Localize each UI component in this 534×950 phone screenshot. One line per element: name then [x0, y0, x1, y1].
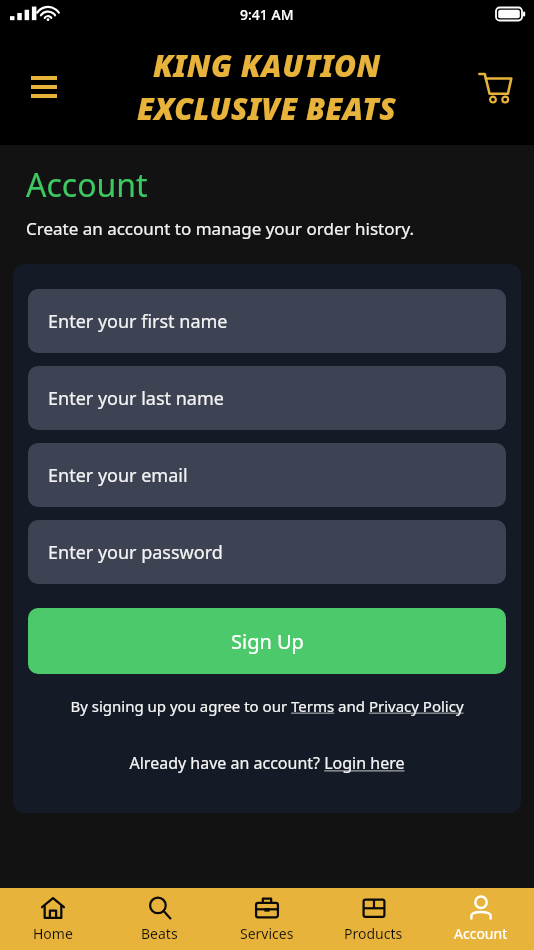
staticText: Home [33, 924, 73, 943]
staticText: Enter your first name [48, 309, 228, 334]
button[interactable]: Cart [471, 63, 519, 111]
staticText: 9:41 AM [240, 5, 294, 24]
button[interactable]: Beats [106, 888, 213, 950]
button[interactable]: Products [320, 888, 427, 950]
staticText: Services [240, 924, 294, 943]
staticText: Enter your password [48, 540, 223, 565]
button[interactable]: Already have an account? Login here [28, 752, 506, 774]
button[interactable]: Enter your first name [28, 289, 506, 353]
staticText: Sign Up [231, 628, 304, 655]
staticText: Beats [141, 924, 178, 943]
staticText: KING KAUTION [153, 45, 381, 86]
button[interactable]: Account [427, 888, 534, 950]
button[interactable]: Services [213, 888, 320, 950]
staticText: Account [454, 924, 508, 943]
staticText: Products [344, 924, 403, 943]
staticText: Account [26, 163, 148, 207]
staticText: Enter your email [48, 463, 188, 488]
button[interactable]: Menu [22, 65, 66, 109]
button[interactable]: Enter your password [28, 520, 506, 584]
button[interactable]: By signing up you agree to our Terms and… [28, 696, 506, 716]
staticText: Enter your last name [48, 386, 224, 411]
button[interactable]: Enter your email [28, 443, 506, 507]
button[interactable]: Enter your last name [28, 366, 506, 430]
button[interactable]: Home [0, 888, 106, 950]
button[interactable]: Sign Up [28, 608, 506, 674]
staticText: Create an account to manage your order h… [26, 217, 415, 240]
staticText: EXCLUSIVE BEATS [137, 88, 397, 129]
